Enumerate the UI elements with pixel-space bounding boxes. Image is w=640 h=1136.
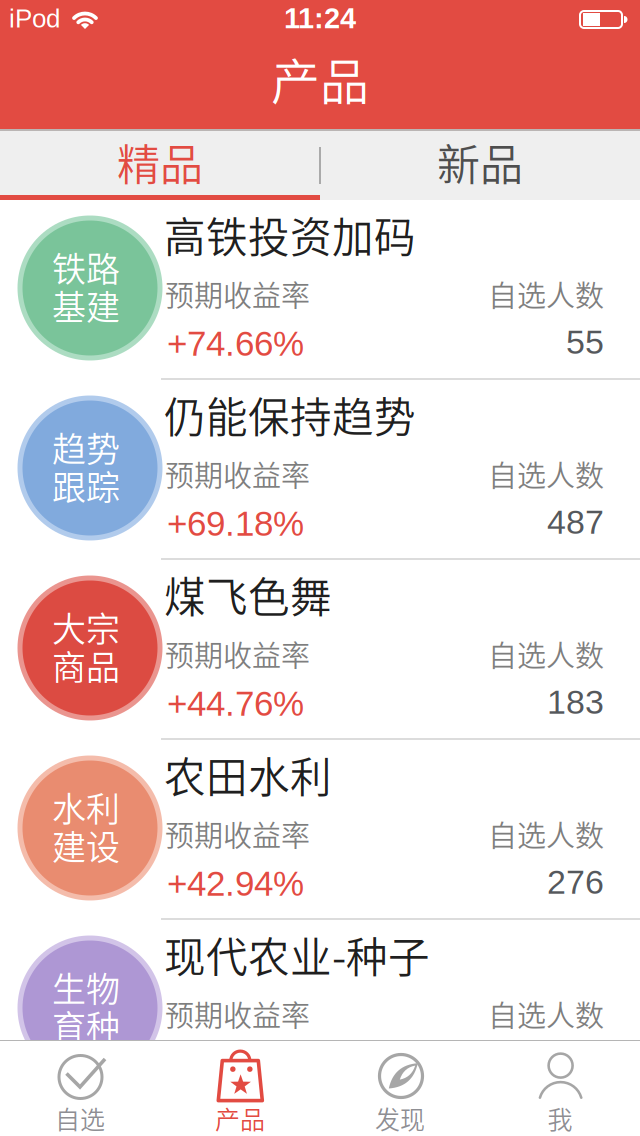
staticText: 我	[547, 1100, 572, 1136]
staticText: 自选	[55, 1100, 105, 1136]
staticText: 建设	[52, 820, 120, 870]
button[interactable]: 发现	[320, 1041, 480, 1136]
staticText: 趋势	[52, 422, 120, 471]
staticText: 产品	[271, 43, 369, 114]
button[interactable]: 铁路	[0, 200, 640, 380]
staticText: 预期收益率	[165, 453, 310, 495]
staticText: +38.11%	[167, 1044, 302, 1083]
staticText: 铁路	[52, 242, 120, 291]
staticText: 自选人数	[488, 273, 604, 315]
staticText: 基建	[52, 280, 120, 330]
staticText: 55	[566, 323, 604, 361]
staticText: 商品	[52, 640, 120, 690]
staticText: 自选人数	[488, 813, 604, 855]
staticText: 预期收益率	[165, 633, 310, 675]
staticText: 大宗	[52, 602, 120, 651]
staticText: 新品	[437, 131, 523, 193]
staticText: 276	[547, 863, 604, 901]
staticText: 94	[566, 1043, 604, 1081]
button[interactable]: 水利	[0, 740, 640, 920]
staticText: 11:24	[284, 2, 356, 34]
button[interactable]: 生物	[0, 920, 640, 1100]
staticText: 育种	[52, 1000, 120, 1050]
staticText: +42.94%	[167, 864, 304, 903]
staticText: 发现	[375, 1100, 425, 1136]
staticText: iPod	[9, 4, 60, 33]
staticText: 农田水利	[164, 744, 332, 805]
staticText: 183	[547, 683, 604, 721]
staticText: 水利	[52, 782, 120, 831]
button[interactable]: 大宗	[0, 560, 640, 740]
staticText: 预期收益率	[165, 813, 310, 855]
button[interactable]: 自选	[0, 1041, 160, 1136]
staticText: 仍能保持趋势	[164, 384, 416, 445]
staticText: 煤飞色舞	[164, 564, 332, 625]
staticText: 自选人数	[488, 993, 604, 1035]
staticText: 高铁投资加码	[164, 204, 416, 265]
button[interactable]: 趋势	[0, 380, 640, 560]
staticText: 预期收益率	[165, 273, 310, 315]
button[interactable]: 新品	[320, 129, 640, 195]
staticText: 预期收益率	[165, 993, 310, 1035]
staticText: 487	[547, 503, 604, 541]
staticText: 产品	[215, 1100, 265, 1136]
staticText: 生物	[52, 962, 120, 1011]
staticText: 跟踪	[52, 460, 120, 510]
button[interactable]: 精品	[0, 129, 320, 195]
staticText: +69.18%	[167, 504, 304, 543]
staticText: +44.76%	[167, 684, 304, 723]
staticText: 自选人数	[488, 633, 604, 675]
button[interactable]: 产品	[160, 1041, 320, 1136]
staticText: 自选人数	[488, 453, 604, 495]
button[interactable]: 我	[480, 1041, 640, 1136]
staticText: +74.66%	[167, 324, 304, 363]
staticText: 现代农业-种子	[164, 924, 430, 985]
staticText: 精品	[117, 131, 203, 193]
